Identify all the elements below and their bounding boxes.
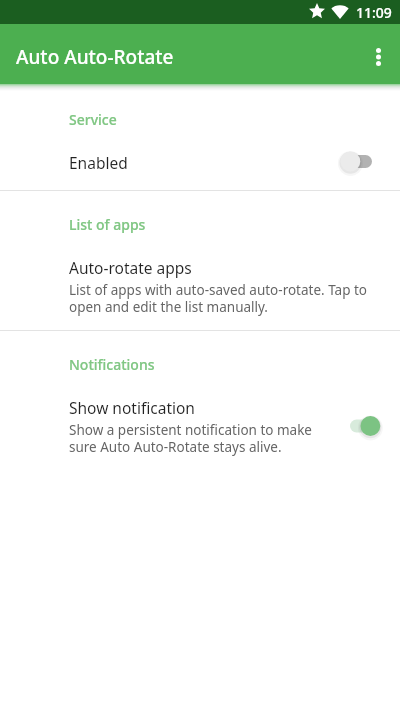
staticText: Show notification bbox=[69, 397, 195, 418]
staticText: Enabled bbox=[69, 152, 128, 173]
staticText: List of apps with auto-saved auto-rotate… bbox=[69, 281, 368, 316]
button[interactable]: More options bbox=[356, 35, 400, 79]
staticText: 11:09 bbox=[356, 3, 392, 22]
staticText: Notifications bbox=[69, 355, 155, 374]
button[interactable]: Enabled, off bbox=[339, 138, 387, 185]
staticText: Auto-rotate apps bbox=[69, 257, 192, 278]
staticText: Auto Auto-Rotate bbox=[16, 44, 174, 70]
button[interactable]: Enabled bbox=[0, 129, 400, 176]
staticText: Show a persistent notification to make s… bbox=[69, 421, 312, 456]
other: Starred bbox=[309, 3, 325, 19]
staticText: Service bbox=[69, 110, 117, 129]
other: Wi-Fi connected bbox=[331, 4, 349, 19]
button[interactable]: Auto-rotate apps bbox=[0, 234, 400, 319]
staticText: List of apps bbox=[69, 215, 146, 234]
button[interactable]: Show notification, on bbox=[339, 402, 387, 450]
button[interactable]: Show notification bbox=[0, 374, 400, 459]
